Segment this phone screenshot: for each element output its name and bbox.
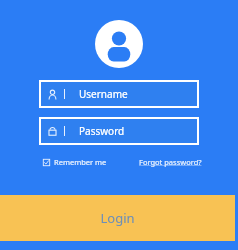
- button[interactable]: Username: [39, 80, 199, 108]
- staticText: Password: [79, 124, 125, 138]
- button[interactable]: Forgot password?: [139, 157, 202, 167]
- staticText: Login: [100, 209, 135, 227]
- staticText: Username: [79, 87, 128, 101]
- staticText: Remember me: [54, 157, 107, 167]
- button[interactable]: Login: [0, 195, 235, 241]
- button[interactable]: Password: [39, 117, 199, 145]
- staticText: Forgot password?: [139, 157, 202, 167]
- other: Profile avatar: [95, 20, 143, 68]
- button[interactable]: Remember me: [43, 157, 107, 167]
